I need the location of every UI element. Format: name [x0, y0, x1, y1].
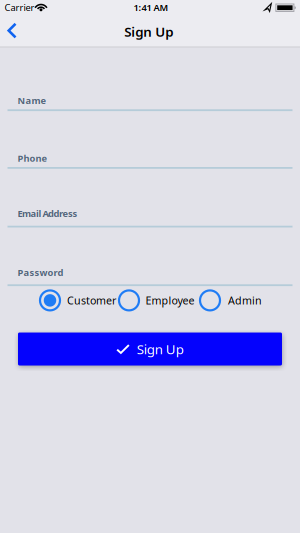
staticText: Email Address [17, 207, 77, 219]
staticText: Carrier [4, 1, 34, 13]
staticText: Sign Up [124, 23, 173, 40]
staticText: Name [17, 94, 46, 107]
staticText: Customer [67, 293, 116, 307]
button[interactable]: Customer [40, 290, 116, 310]
button[interactable]: Admin [200, 290, 262, 310]
staticText: Admin [228, 293, 262, 307]
button[interactable]: Employee [119, 290, 194, 310]
staticText: Employee [145, 293, 194, 307]
button[interactable]: Phone [0, 150, 300, 176]
button[interactable]: Email Address [0, 208, 300, 234]
button[interactable] [1, 16, 23, 46]
button[interactable]: Name [0, 92, 300, 118]
button[interactable]: Sign Up [18, 332, 282, 365]
staticText: 1:41 AM [133, 1, 168, 13]
staticText: Password [17, 266, 63, 279]
staticText: Phone [17, 152, 47, 164]
staticText: Sign Up [137, 340, 184, 358]
button[interactable]: Password [0, 267, 300, 293]
